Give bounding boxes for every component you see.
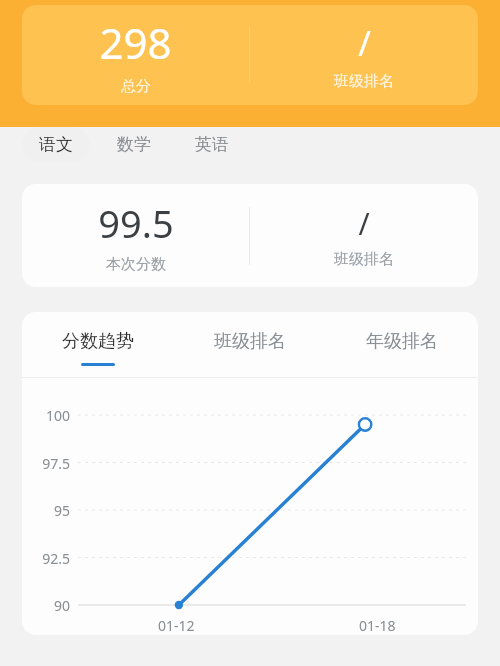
staticText: 100: [22, 406, 70, 425]
staticText: /: [358, 20, 371, 66]
button[interactable]: 语文: [22, 127, 90, 162]
staticText: 总分: [121, 77, 151, 96]
staticText: 92.5: [22, 549, 70, 568]
staticText: 班级排名: [334, 250, 394, 269]
staticText: 01-12: [158, 616, 195, 635]
button[interactable]: 分数趋势: [22, 312, 174, 377]
staticText: 数学: [117, 134, 151, 155]
staticText: 01-18: [359, 616, 396, 635]
staticText: 90: [22, 596, 70, 615]
button[interactable]: 298: [22, 5, 249, 105]
button[interactable]: 年级排名: [326, 312, 478, 377]
button[interactable]: 班级排名: [174, 312, 326, 377]
button[interactable]: 99.5: [22, 184, 249, 287]
staticText: 年级排名: [366, 330, 438, 353]
button[interactable]: /: [250, 5, 478, 105]
staticText: 班级排名: [214, 330, 286, 353]
staticText: 分数趋势: [62, 330, 134, 353]
staticText: 班级排名: [334, 72, 394, 91]
staticText: 97.5: [22, 454, 70, 473]
button[interactable]: 英语: [178, 127, 246, 162]
staticText: 英语: [195, 134, 229, 155]
button[interactable]: 99.5: [22, 184, 478, 287]
button[interactable]: 298: [22, 5, 478, 105]
staticText: 本次分数: [106, 255, 166, 274]
staticText: 95: [22, 501, 70, 520]
button[interactable]: /: [250, 184, 478, 287]
staticText: /: [358, 203, 370, 244]
staticText: 语文: [39, 134, 73, 155]
staticText: 298: [99, 14, 172, 71]
staticText: 99.5: [98, 197, 174, 249]
button[interactable]: 数学: [100, 127, 168, 162]
